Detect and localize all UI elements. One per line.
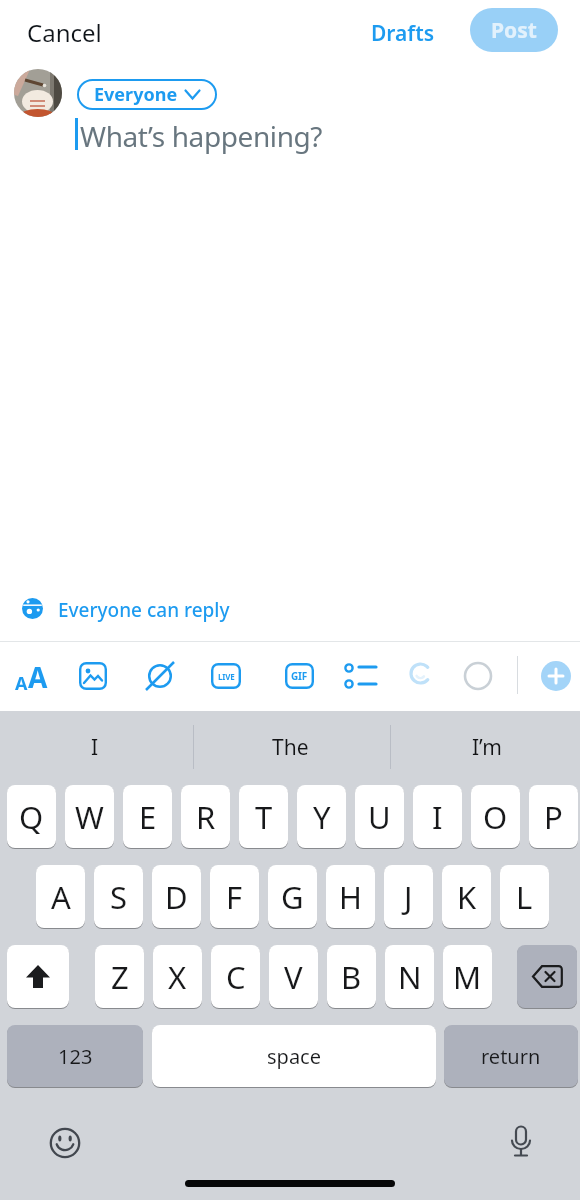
staticText: H — [339, 876, 362, 918]
button[interactable]: M — [443, 945, 492, 1008]
staticText: F — [226, 876, 243, 918]
staticText: A — [28, 658, 48, 696]
staticText: space — [267, 1043, 321, 1070]
staticText: N — [398, 956, 422, 998]
button[interactable]: D — [152, 865, 201, 928]
staticText: D — [165, 876, 188, 918]
button[interactable]: O — [471, 785, 520, 848]
button[interactable]: L — [500, 865, 549, 928]
button[interactable]: V — [269, 945, 318, 1008]
staticText: The — [272, 733, 309, 762]
staticText: A — [15, 671, 28, 696]
button[interactable]: Everyone can reply — [58, 597, 230, 623]
button[interactable]: F — [210, 865, 259, 928]
staticText: I’m — [472, 733, 502, 762]
staticText: S — [110, 876, 128, 918]
button[interactable]: I — [413, 785, 462, 848]
button[interactable]: I — [20, 725, 170, 769]
button[interactable] — [541, 661, 571, 691]
button[interactable] — [7, 945, 69, 1008]
staticText: LIVE — [218, 671, 235, 682]
button[interactable]: A — [36, 865, 85, 928]
staticText: J — [404, 876, 413, 918]
button[interactable] — [343, 662, 379, 690]
button[interactable]: The — [215, 725, 365, 769]
staticText: 123 — [58, 1043, 93, 1070]
button[interactable]: H — [326, 865, 375, 928]
staticText: I — [91, 733, 99, 762]
staticText: I — [432, 796, 443, 838]
button[interactable] — [408, 662, 436, 690]
button[interactable]: N — [385, 945, 434, 1008]
staticText: What’s happening? — [80, 117, 323, 155]
button[interactable]: Z — [95, 945, 144, 1008]
button[interactable] — [79, 662, 107, 690]
button[interactable]: GIF — [285, 663, 314, 689]
button[interactable]: S — [94, 865, 143, 928]
button[interactable]: space — [152, 1025, 436, 1087]
button[interactable]: R — [181, 785, 230, 848]
button[interactable] — [48, 1126, 82, 1160]
staticText: T — [255, 796, 273, 838]
button[interactable]: K — [442, 865, 491, 928]
button[interactable]: Q — [7, 785, 56, 848]
staticText: Post — [491, 16, 537, 45]
staticText: L — [516, 876, 533, 918]
staticText: O — [483, 796, 508, 838]
button[interactable]: return — [444, 1025, 578, 1087]
button[interactable]: P — [529, 785, 578, 848]
staticText: A — [51, 876, 71, 918]
staticText: Everyone — [94, 82, 178, 107]
staticText: R — [196, 796, 216, 838]
button[interactable]: T — [239, 785, 288, 848]
staticText: M — [453, 956, 482, 998]
staticText: B — [341, 956, 362, 998]
button[interactable]: I’m — [412, 725, 562, 769]
button[interactable] — [517, 945, 577, 1008]
button[interactable]: C — [211, 945, 260, 1008]
button[interactable]: 123 — [7, 1025, 143, 1087]
staticText: Q — [19, 796, 44, 838]
staticText: X — [168, 956, 187, 998]
staticText: GIF — [291, 669, 308, 683]
staticText: V — [284, 956, 303, 998]
staticText: W — [75, 796, 104, 838]
staticText: C — [226, 956, 246, 998]
button[interactable] — [505, 1125, 537, 1161]
button[interactable]: G — [268, 865, 317, 928]
button[interactable]: J — [384, 865, 433, 928]
button[interactable]: X — [153, 945, 202, 1008]
staticText: Y — [313, 796, 331, 838]
button[interactable]: Y — [297, 785, 346, 848]
button[interactable]: LIVE — [211, 663, 241, 689]
staticText: return — [481, 1043, 541, 1070]
button[interactable]: Drafts — [371, 19, 435, 48]
staticText: P — [544, 796, 563, 838]
button[interactable]: Everyone — [77, 79, 217, 110]
button[interactable]: Post — [470, 8, 558, 52]
staticText: E — [139, 796, 157, 838]
button[interactable] — [22, 598, 43, 619]
button[interactable]: A — [15, 658, 48, 696]
staticText: Z — [111, 956, 129, 998]
staticText: U — [368, 796, 391, 838]
button[interactable]: U — [355, 785, 404, 848]
button[interactable] — [147, 663, 173, 689]
button[interactable]: B — [327, 945, 376, 1008]
button[interactable]: W — [65, 785, 114, 848]
staticText: G — [281, 876, 304, 918]
button[interactable]: E — [123, 785, 172, 848]
staticText: K — [457, 876, 477, 918]
button[interactable]: Cancel — [27, 16, 102, 49]
